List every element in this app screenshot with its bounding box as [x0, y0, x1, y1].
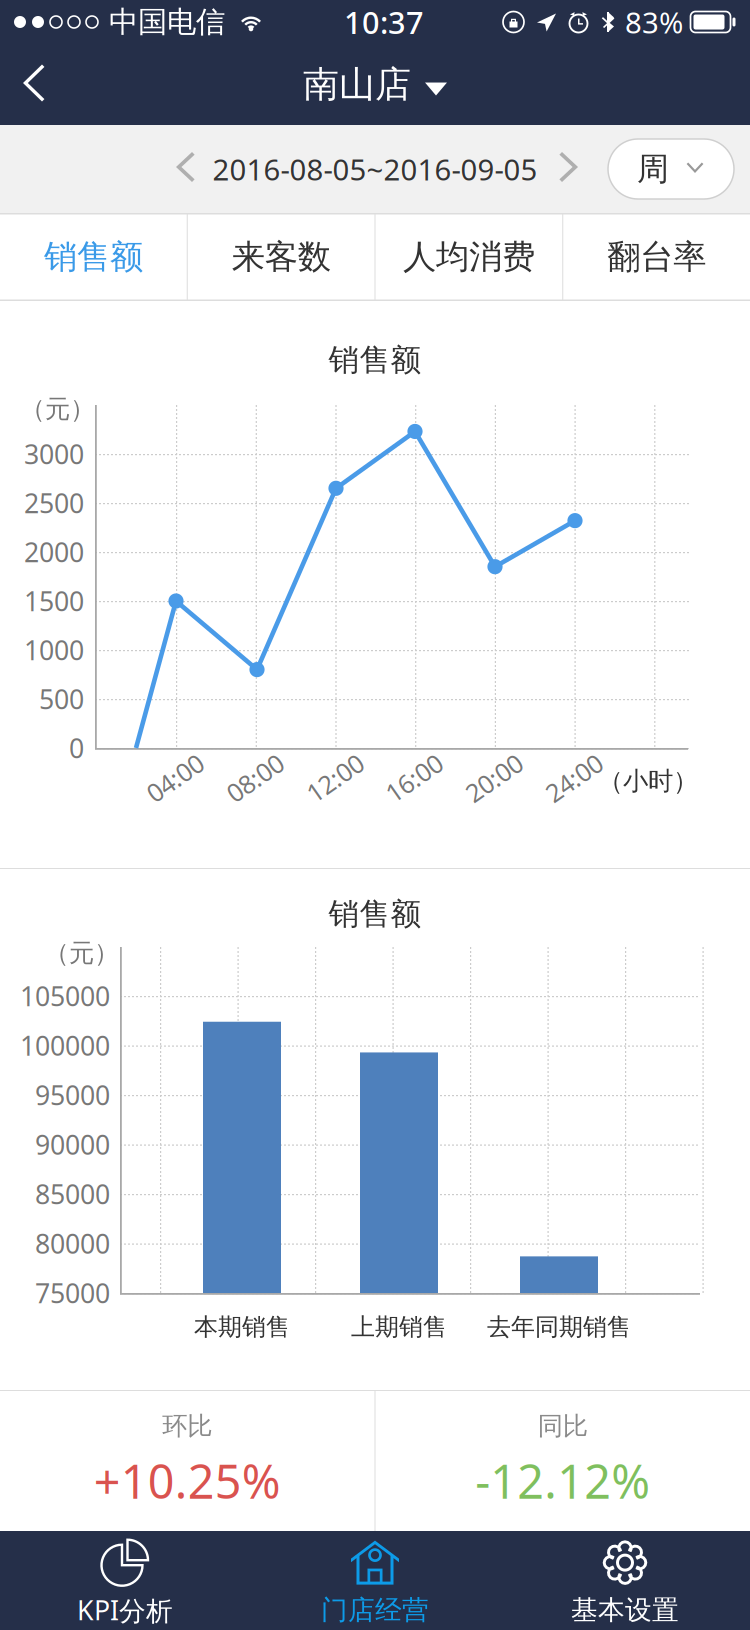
button[interactable]: KPI分析 [0, 1531, 250, 1630]
staticText: 12:00 [303, 761, 366, 795]
staticText: 20:00 [462, 761, 525, 795]
staticText: KPI分析 [77, 1592, 173, 1628]
staticText: 0 [69, 730, 84, 766]
staticText: （小时） [598, 765, 698, 796]
button[interactable]: 南山店 [289, 52, 461, 117]
staticText: 16:00 [382, 761, 445, 795]
staticText: 3000 [24, 436, 84, 472]
staticText: （元） [44, 937, 119, 968]
button[interactable]: Back [16, 56, 78, 112]
staticText: 基本设置 [571, 1594, 679, 1626]
staticText: 105000 [20, 978, 110, 1014]
staticText: 去年同期销售 [487, 1312, 631, 1342]
staticText: 上期销售 [351, 1312, 447, 1342]
staticText: 门店经营 [321, 1594, 429, 1626]
button[interactable]: 门店经营 [250, 1531, 500, 1630]
button[interactable]: 人均消费 [375, 213, 562, 301]
staticText: 销售额 [44, 236, 143, 277]
staticText: 1500 [24, 583, 84, 619]
staticText: 1000 [24, 632, 84, 668]
staticText: 2016-08-05~2016-09-05 [212, 149, 537, 188]
staticText: 90000 [35, 1127, 110, 1162]
staticText: 人均消费 [403, 236, 535, 277]
button[interactable]: 来客数 [188, 213, 375, 301]
staticText: 销售额 [328, 895, 421, 933]
staticText: +10.25% [94, 1450, 281, 1512]
staticText: 04:00 [143, 761, 206, 795]
staticText: 2500 [24, 485, 84, 521]
button[interactable]: 翻台率 [563, 213, 750, 301]
staticText: 环比 [162, 1410, 212, 1442]
staticText: 10:37 [344, 2, 424, 42]
staticText: 100000 [20, 1028, 110, 1063]
staticText: 08:00 [223, 761, 286, 795]
staticText: 85000 [35, 1176, 110, 1212]
staticText: 周 [637, 149, 669, 189]
staticText: -12.12% [475, 1450, 650, 1512]
staticText: 2000 [24, 534, 84, 570]
staticText: 销售额 [328, 341, 421, 379]
staticText: 500 [39, 681, 84, 717]
staticText: 95000 [35, 1077, 110, 1113]
button[interactable]: Previous period [171, 147, 199, 191]
staticText: 来客数 [232, 236, 331, 277]
staticText: 80000 [35, 1226, 110, 1261]
button[interactable]: 基本设置 [500, 1531, 750, 1630]
staticText: 翻台率 [607, 236, 706, 277]
staticText: 83% [625, 2, 683, 41]
staticText: 75000 [35, 1275, 110, 1311]
staticText: （元） [20, 393, 95, 424]
staticText: 同比 [538, 1410, 588, 1442]
staticText: 本期销售 [194, 1312, 290, 1342]
staticText: 24:00 [542, 761, 605, 795]
button[interactable]: Next period [553, 147, 581, 191]
staticText: 南山店 [303, 62, 411, 107]
button[interactable]: 周 [608, 139, 734, 199]
staticText: 中国电信 [109, 4, 225, 40]
button[interactable]: 销售额 [0, 213, 187, 301]
